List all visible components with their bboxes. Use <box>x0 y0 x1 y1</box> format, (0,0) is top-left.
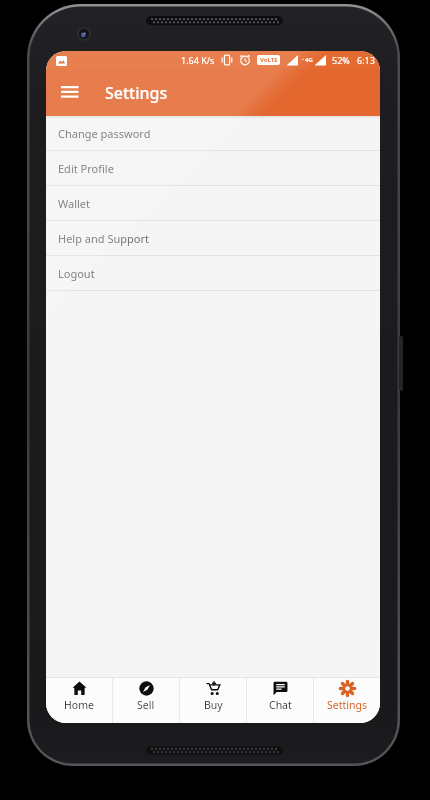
button[interactable]: Logout <box>46 256 380 290</box>
button[interactable]: Edit Profile <box>46 151 380 185</box>
button[interactable]: Sell <box>113 678 179 723</box>
button[interactable]: Wallet <box>46 186 380 220</box>
staticText: Help and Support <box>58 231 149 246</box>
staticText: Buy <box>204 698 223 712</box>
staticText: Settings <box>327 698 367 712</box>
staticText: 52% <box>332 54 350 66</box>
staticText: VoLTE <box>260 56 278 64</box>
button[interactable]: Home <box>46 678 112 723</box>
staticText: 6:13 <box>357 54 375 66</box>
staticText: Change password <box>58 126 151 141</box>
button[interactable]: Buy <box>180 678 246 723</box>
staticText: Logout <box>58 266 95 281</box>
button[interactable]: Help and Support <box>46 221 380 255</box>
button[interactable]: Settings <box>314 678 380 723</box>
staticText: 1.64 K/s <box>181 54 215 66</box>
staticText: 4G <box>305 56 313 64</box>
staticText: Home <box>64 698 94 712</box>
staticText: Chat <box>269 698 292 712</box>
staticText: Settings <box>105 82 168 104</box>
button[interactable]: Chat <box>247 678 313 723</box>
staticText: Wallet <box>58 196 91 211</box>
staticText: · <box>302 55 304 65</box>
button[interactable]: Change password <box>46 116 380 150</box>
staticText: Sell <box>137 698 155 712</box>
staticText: Edit Profile <box>58 161 114 176</box>
button[interactable] <box>46 69 93 116</box>
